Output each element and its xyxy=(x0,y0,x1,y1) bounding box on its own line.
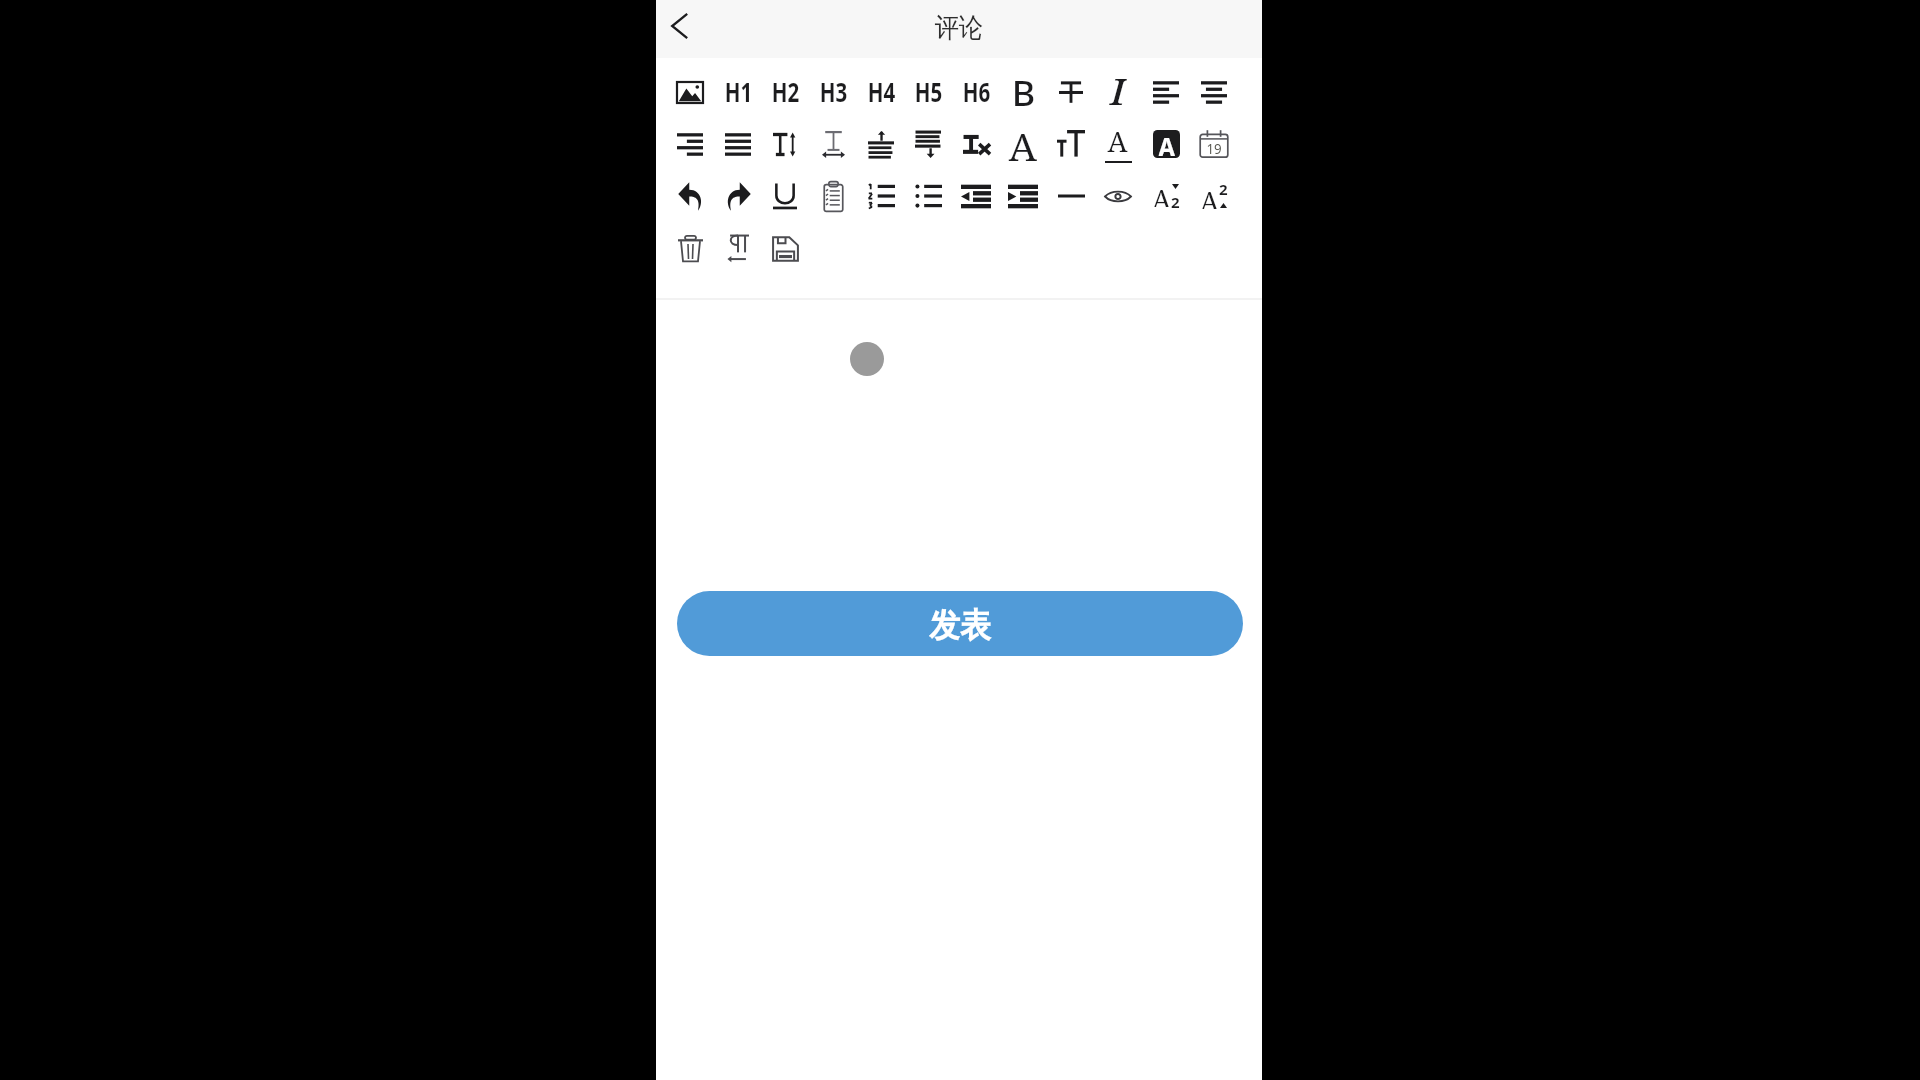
button[interactable]: image xyxy=(670,72,710,112)
staticText: A xyxy=(1158,130,1175,157)
button[interactable]: hr xyxy=(1051,176,1091,216)
button[interactable]: preview xyxy=(1098,176,1138,216)
button[interactable]: redo xyxy=(718,176,758,216)
button[interactable]: h4 xyxy=(861,72,901,112)
staticText: I xyxy=(1109,67,1127,111)
button[interactable]: underlineA xyxy=(1098,124,1138,164)
button[interactable]: h2 xyxy=(765,72,805,112)
staticText: 19 xyxy=(1206,139,1222,158)
button[interactable]: h1 xyxy=(718,72,758,112)
button[interactable]: alignLeft xyxy=(1146,72,1186,112)
button[interactable]: subscript xyxy=(1146,176,1186,216)
staticText: H1 xyxy=(725,73,752,110)
button[interactable]: save xyxy=(765,229,805,269)
button[interactable]: serifA xyxy=(1003,124,1043,164)
staticText: A xyxy=(1200,183,1220,209)
staticText: B xyxy=(1012,70,1035,112)
button[interactable]: bold xyxy=(1003,72,1043,112)
button[interactable]: trash xyxy=(670,229,710,269)
button[interactable]: letterSpacing xyxy=(813,124,853,164)
button[interactable]: h6 xyxy=(956,72,996,112)
staticText: 2 xyxy=(1219,179,1228,199)
staticText: A xyxy=(1152,181,1172,207)
staticText: H5 xyxy=(915,73,942,110)
button[interactable]: underline xyxy=(765,176,805,216)
staticText: H6 xyxy=(963,73,990,110)
staticText: 发表 xyxy=(929,604,991,646)
button[interactable]: bulletList xyxy=(908,176,948,216)
button[interactable]: alignRight xyxy=(670,124,710,164)
button[interactable]: h3 xyxy=(813,72,853,112)
button[interactable]: fontSize xyxy=(1051,124,1091,164)
button[interactable]: alignJustify xyxy=(718,124,758,164)
button[interactable]: outdent xyxy=(956,176,996,216)
staticText: H2 xyxy=(772,73,799,110)
button[interactable]: indent xyxy=(1003,176,1043,216)
staticText: H3 xyxy=(820,73,847,110)
staticText: A xyxy=(1008,121,1037,163)
button[interactable]: alignTop xyxy=(861,124,901,164)
button[interactable]: clipboard xyxy=(813,176,853,216)
button[interactable]: calendar xyxy=(1194,124,1234,164)
button[interactable]: h5 xyxy=(908,72,948,112)
button[interactable]: bgColor xyxy=(1146,124,1186,164)
button[interactable]: lineHeight xyxy=(765,124,805,164)
button[interactable]: clearFormat xyxy=(956,124,996,164)
button[interactable]: alignCenter xyxy=(1194,72,1234,112)
staticText: A xyxy=(1107,123,1128,160)
button[interactable]: pilcrow xyxy=(718,229,758,269)
button[interactable]: strike xyxy=(1051,72,1091,112)
staticText: 评论 xyxy=(935,11,983,45)
button[interactable]: superscript xyxy=(1194,176,1234,216)
staticText: H4 xyxy=(868,73,895,110)
button[interactable]: undo xyxy=(670,176,710,216)
button[interactable]: italic xyxy=(1098,72,1138,112)
button[interactable]: alignBottom xyxy=(908,124,948,164)
button[interactable]: 发表 xyxy=(677,591,1243,656)
button[interactable]: Back xyxy=(656,2,704,50)
staticText: 2 xyxy=(1171,192,1180,212)
button[interactable]: orderedList xyxy=(861,176,901,216)
